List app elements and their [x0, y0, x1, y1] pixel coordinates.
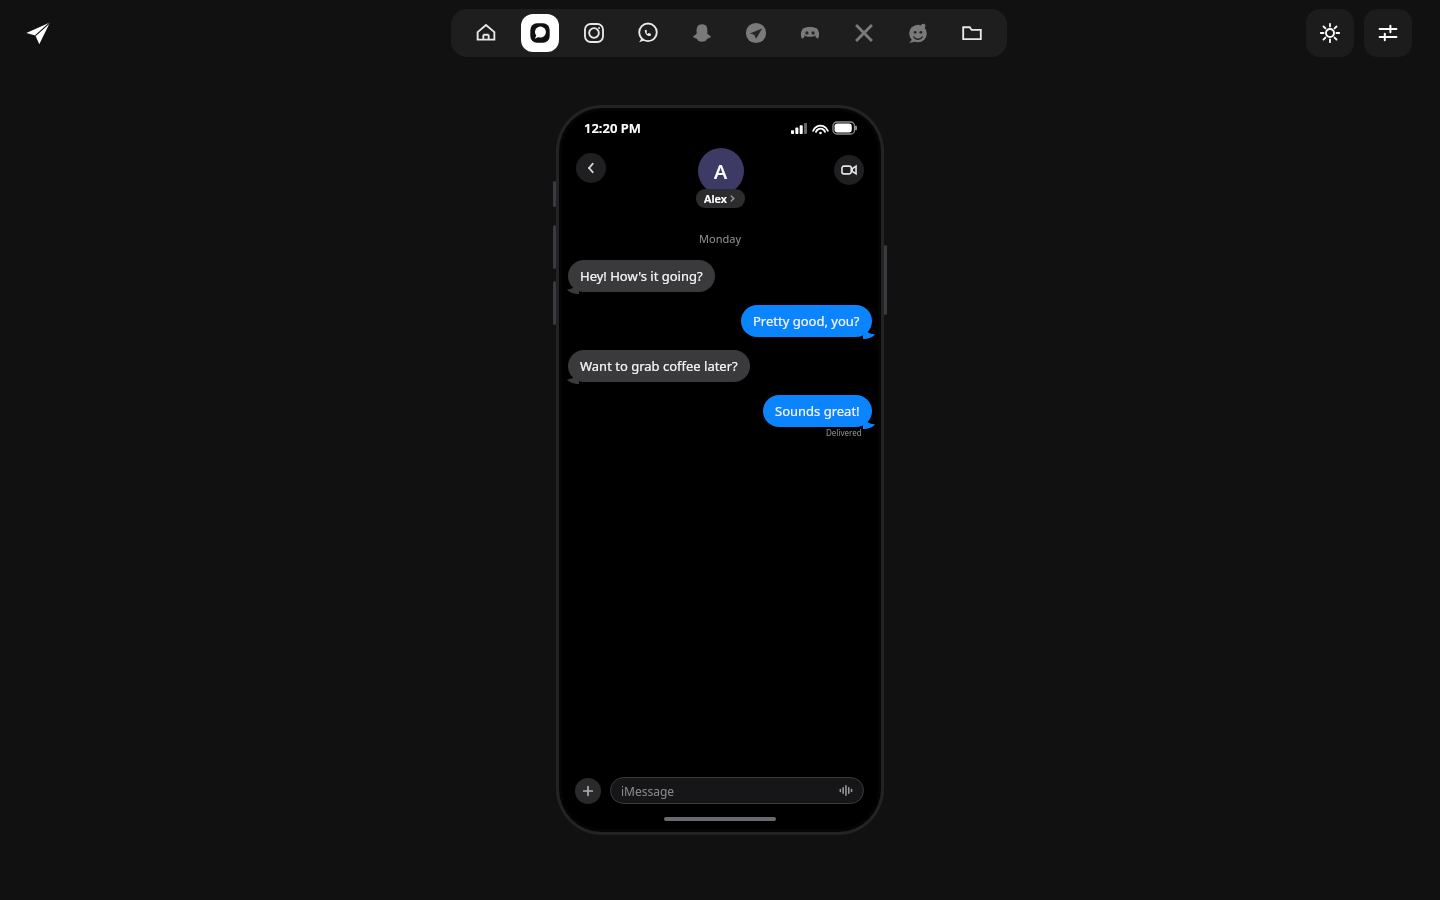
staticText: Hey! How's it going?: [580, 267, 703, 285]
button[interactable]: Files: [945, 11, 999, 55]
button[interactable]: Video call: [834, 155, 864, 185]
button[interactable]: Home: [459, 11, 513, 55]
button[interactable]: Snapchat: [675, 11, 729, 55]
button[interactable]: Pretty good, you?: [741, 305, 872, 337]
button[interactable]: Brightness: [1306, 9, 1354, 57]
button[interactable]: WhatsApp: [621, 11, 675, 55]
button[interactable]: Instagram: [567, 11, 621, 55]
button[interactable]: Telegram: [729, 11, 783, 55]
button[interactable]: A: [696, 148, 745, 213]
button[interactable]: Discord: [783, 11, 837, 55]
button[interactable]: Reddit: [891, 11, 945, 55]
button[interactable]: Hey! How's it going?: [568, 260, 715, 292]
button[interactable]: Sounds great!: [763, 395, 872, 427]
button[interactable]: Settings: [1364, 9, 1412, 57]
button[interactable]: X: [837, 11, 891, 55]
staticText: Sounds great!: [775, 402, 860, 420]
staticText: Pretty good, you?: [753, 312, 860, 330]
button[interactable]: Back: [576, 153, 606, 183]
staticText: iMessage: [621, 783, 675, 799]
button[interactable]: Add attachment: [575, 778, 601, 804]
staticText: Delivered: [826, 427, 862, 438]
button[interactable]: Want to grab coffee later?: [568, 350, 750, 382]
button[interactable]: iMessage: [621, 777, 853, 804]
button[interactable]: Messages: [513, 11, 567, 55]
staticText: A: [714, 158, 728, 185]
staticText: 12:20 PM: [584, 119, 641, 137]
staticText: Want to grab coffee later?: [580, 357, 738, 375]
staticText: Alex: [704, 191, 727, 206]
button[interactable]: App logo: [22, 17, 54, 49]
staticText: Monday: [699, 231, 741, 246]
